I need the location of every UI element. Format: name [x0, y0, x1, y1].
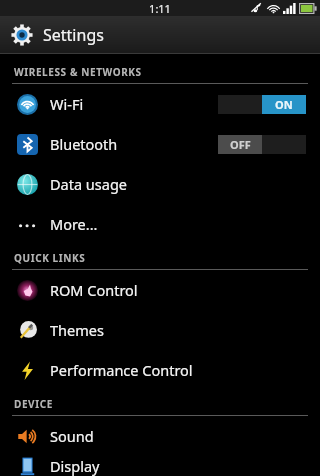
staticText: More...	[50, 214, 306, 234]
button[interactable]: Bluetooth off	[218, 135, 306, 154]
button[interactable]: Data usage	[0, 164, 320, 204]
staticText: WIRELESS & NETWORKS	[14, 65, 142, 79]
button[interactable]: More...	[0, 204, 320, 244]
staticText: Settings	[43, 24, 104, 46]
staticText: Data usage	[50, 174, 306, 194]
staticText: Bluetooth	[50, 134, 218, 154]
staticText: Performance Control	[50, 360, 306, 380]
button[interactable]: Display	[0, 456, 320, 476]
staticText: OFF	[230, 137, 251, 152]
staticText: Wi-Fi	[50, 94, 218, 114]
button[interactable]: Performance Control	[0, 350, 320, 390]
staticText: ON	[275, 97, 293, 112]
button[interactable]: Bluetooth	[0, 124, 320, 164]
button[interactable]: Sound	[0, 416, 320, 456]
staticText: Display	[50, 456, 306, 476]
staticText: Sound	[50, 426, 306, 446]
staticText: QUICK LINKS	[14, 251, 86, 265]
button[interactable]: Wi-Fi on	[218, 95, 306, 114]
staticText: DEVICE	[14, 397, 53, 411]
button[interactable]: ROM Control	[0, 270, 320, 310]
button[interactable]: Themes	[0, 310, 320, 350]
staticText: Themes	[50, 320, 306, 340]
button[interactable]: Wi-Fi	[0, 84, 320, 124]
staticText: 1:11	[149, 1, 171, 16]
staticText: ROM Control	[50, 280, 306, 300]
